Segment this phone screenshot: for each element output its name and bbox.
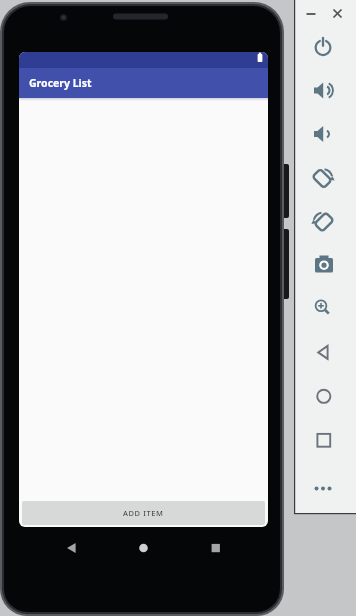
button[interactable]: [308, 32, 338, 62]
button[interactable]: [308, 119, 338, 149]
button[interactable]: [308, 292, 338, 322]
button[interactable]: [303, 6, 320, 23]
button[interactable]: [329, 6, 346, 23]
button[interactable]: [129, 534, 157, 562]
staticText: ADD ITEM: [123, 508, 164, 518]
button[interactable]: ADD ITEM: [22, 501, 265, 525]
button[interactable]: [308, 381, 338, 411]
button[interactable]: [308, 206, 338, 236]
button[interactable]: [308, 75, 338, 105]
button[interactable]: [308, 337, 338, 367]
button[interactable]: [308, 473, 338, 503]
button[interactable]: [308, 162, 338, 192]
button[interactable]: [308, 250, 338, 280]
button[interactable]: [57, 534, 85, 562]
button[interactable]: [308, 425, 338, 455]
staticText: Grocery List: [29, 76, 92, 90]
button[interactable]: [201, 534, 229, 562]
